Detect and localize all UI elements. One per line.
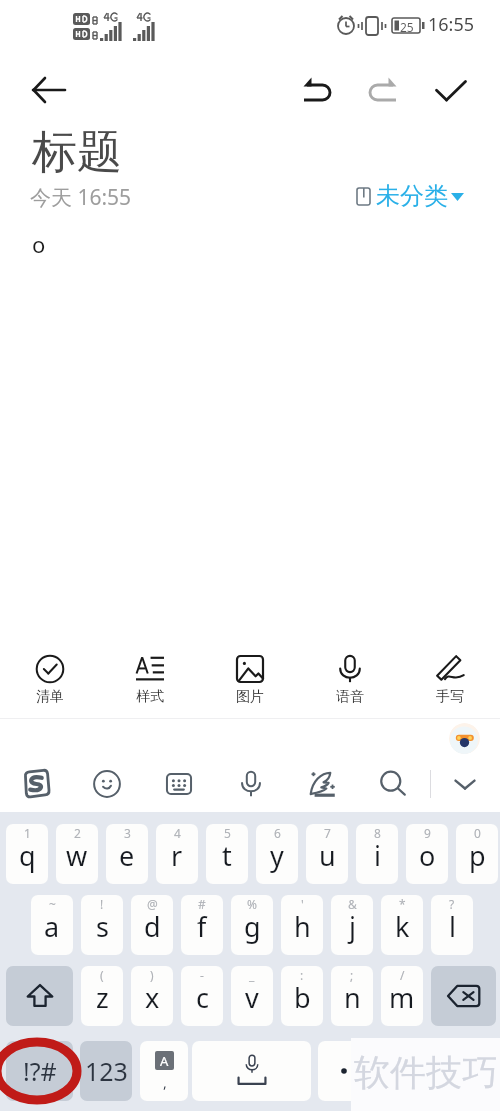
button[interactable]: * (381, 895, 423, 955)
button[interactable]: Assistant avatar (449, 723, 480, 754)
button[interactable]: 清单 (0, 648, 100, 712)
staticText: 标题 (32, 124, 122, 181)
button[interactable]: 2 (56, 824, 98, 884)
staticText: 未分类 (376, 181, 448, 211)
button[interactable]: Redo (355, 62, 411, 118)
staticText: & (348, 896, 357, 912)
staticText: ~ (49, 896, 56, 912)
button[interactable]: Keyboard layout (157, 762, 201, 806)
staticText: o (419, 837, 436, 874)
button[interactable]: @ (131, 895, 173, 955)
staticText: 样式 (136, 688, 164, 706)
staticText: ) (150, 967, 154, 983)
button[interactable]: ? (431, 895, 473, 955)
staticText: % (247, 896, 257, 912)
button[interactable]: & (331, 895, 373, 955)
button[interactable]: Shift (6, 966, 73, 1026)
staticText: h (294, 908, 311, 945)
staticText: 1 (24, 825, 31, 841)
button[interactable]: Search (371, 762, 415, 806)
button[interactable]: 手写 (400, 648, 500, 712)
staticText: b (294, 979, 311, 1016)
button[interactable]: ' (281, 895, 323, 955)
button[interactable]: 5 (206, 824, 248, 884)
button[interactable]: Hide keyboard (443, 762, 487, 806)
button[interactable]: : (281, 966, 323, 1026)
button[interactable]: 样式 (100, 648, 200, 712)
staticText: ! (100, 896, 104, 912)
staticText: y (270, 837, 284, 874)
button[interactable]: # (181, 895, 223, 955)
button[interactable]: Language (140, 1041, 188, 1101)
staticText: 图片 (236, 688, 264, 706)
staticText: 9 (424, 825, 431, 841)
button[interactable]: Period (318, 1041, 370, 1101)
button[interactable]: - (181, 966, 223, 1026)
staticText: i (374, 837, 381, 874)
button[interactable]: 语音 (300, 648, 400, 712)
button[interactable]: Enter (378, 1041, 494, 1101)
staticText: 软件技巧 (354, 1050, 498, 1095)
staticText: _ (249, 967, 255, 983)
button[interactable]: ; (331, 966, 373, 1026)
button[interactable]: 9 (406, 824, 448, 884)
button[interactable]: Back (21, 62, 77, 118)
button[interactable]: Backspace (431, 966, 496, 1026)
button[interactable]: _ (231, 966, 273, 1026)
button[interactable]: 未分类 (352, 180, 468, 212)
button[interactable]: ( (81, 966, 123, 1026)
staticText: ? (449, 896, 455, 912)
button[interactable]: 0 (456, 824, 498, 884)
staticText: g (244, 908, 261, 945)
button[interactable]: % (231, 895, 273, 955)
staticText: ' (301, 896, 304, 912)
button[interactable]: Handwriting (301, 762, 345, 806)
staticText: 5 (224, 825, 231, 841)
staticText: / (400, 967, 405, 983)
button[interactable]: Emoji (85, 762, 129, 806)
button[interactable]: 7 (306, 824, 348, 884)
button[interactable]: / (381, 966, 423, 1026)
button[interactable]: Symbols (6, 1041, 73, 1101)
button[interactable]: 3 (106, 824, 148, 884)
staticText: q (19, 837, 36, 874)
button[interactable]: ! (81, 895, 123, 955)
staticText: 4 (174, 825, 181, 841)
staticText: k (395, 908, 410, 945)
staticText: * (399, 896, 406, 912)
button[interactable]: Input method (13, 762, 57, 806)
button[interactable]: Done (423, 63, 479, 119)
staticText: d (144, 908, 161, 945)
staticText: 语音 (336, 688, 364, 706)
button[interactable]: Space (192, 1041, 311, 1101)
button[interactable]: Undo (289, 62, 345, 118)
button[interactable]: 4 (156, 824, 198, 884)
staticText: 7 (324, 825, 331, 841)
button[interactable]: ) (131, 966, 173, 1026)
staticText: , (163, 1073, 167, 1092)
staticText: a (44, 908, 60, 945)
staticText: ( (100, 967, 104, 983)
staticText: l (449, 908, 456, 945)
staticText: e (119, 837, 135, 874)
button[interactable]: Numbers (80, 1041, 132, 1101)
staticText: 3 (124, 825, 131, 841)
staticText: 25 (400, 19, 414, 35)
button[interactable]: ~ (31, 895, 73, 955)
button[interactable]: 6 (256, 824, 298, 884)
staticText: s (96, 908, 109, 945)
staticText: t (222, 837, 232, 874)
staticText: f (197, 908, 207, 945)
staticText: 0 (474, 825, 481, 841)
staticText: x (145, 979, 160, 1016)
button[interactable]: 1 (6, 824, 48, 884)
staticText: 123 (85, 1054, 128, 1088)
staticText: n (344, 979, 361, 1016)
staticText: u (319, 837, 336, 874)
staticText: v (245, 979, 259, 1016)
staticText: p (469, 837, 486, 874)
button[interactable]: 图片 (200, 648, 300, 712)
button[interactable]: 8 (356, 824, 398, 884)
staticText: A (160, 1052, 169, 1070)
button[interactable]: Voice input (229, 762, 273, 806)
